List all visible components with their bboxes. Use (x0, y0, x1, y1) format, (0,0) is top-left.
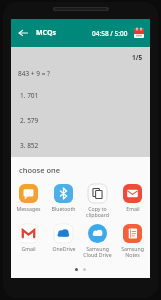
staticText: Messages (16, 205, 41, 212)
staticText: Samsung Cloud Drive (83, 245, 112, 258)
button[interactable]: OneDrive (47, 224, 80, 252)
button[interactable]: Gmail (12, 224, 45, 252)
button[interactable]: Back (14, 24, 32, 42)
staticText: Email (126, 205, 140, 212)
button[interactable]: Copy to clipboard (81, 184, 114, 218)
staticText: MCQs (36, 28, 57, 38)
button[interactable]: Calendar (132, 26, 146, 40)
button[interactable]: 1. 701 (11, 90, 150, 100)
staticText: OneDrive (52, 245, 76, 252)
button[interactable]: 3. 852 (11, 140, 150, 150)
staticText: 1. 701 (20, 91, 39, 100)
staticText: 843 + 9 = ? (18, 69, 50, 78)
staticText: Gmail (21, 245, 36, 252)
button[interactable]: 2. 579 (11, 115, 150, 125)
button[interactable]: Bluetooth (47, 184, 80, 212)
button[interactable]: Messages (12, 184, 45, 212)
button[interactable]: Email (116, 184, 149, 212)
button[interactable]: Samsung Notes (116, 224, 149, 258)
staticText: 2. 579 (20, 116, 39, 125)
staticText: 1/5 (132, 53, 143, 62)
button[interactable]: Samsung Cloud Drive (81, 224, 114, 258)
staticText: Samsung Notes (121, 245, 144, 258)
staticText: 3. 852 (20, 141, 39, 150)
staticText: choose one (19, 165, 61, 175)
staticText: Copy to clipboard (86, 205, 109, 218)
staticText: 04:58 / 5:00 (92, 29, 128, 38)
staticText: Bluetooth (51, 205, 76, 212)
